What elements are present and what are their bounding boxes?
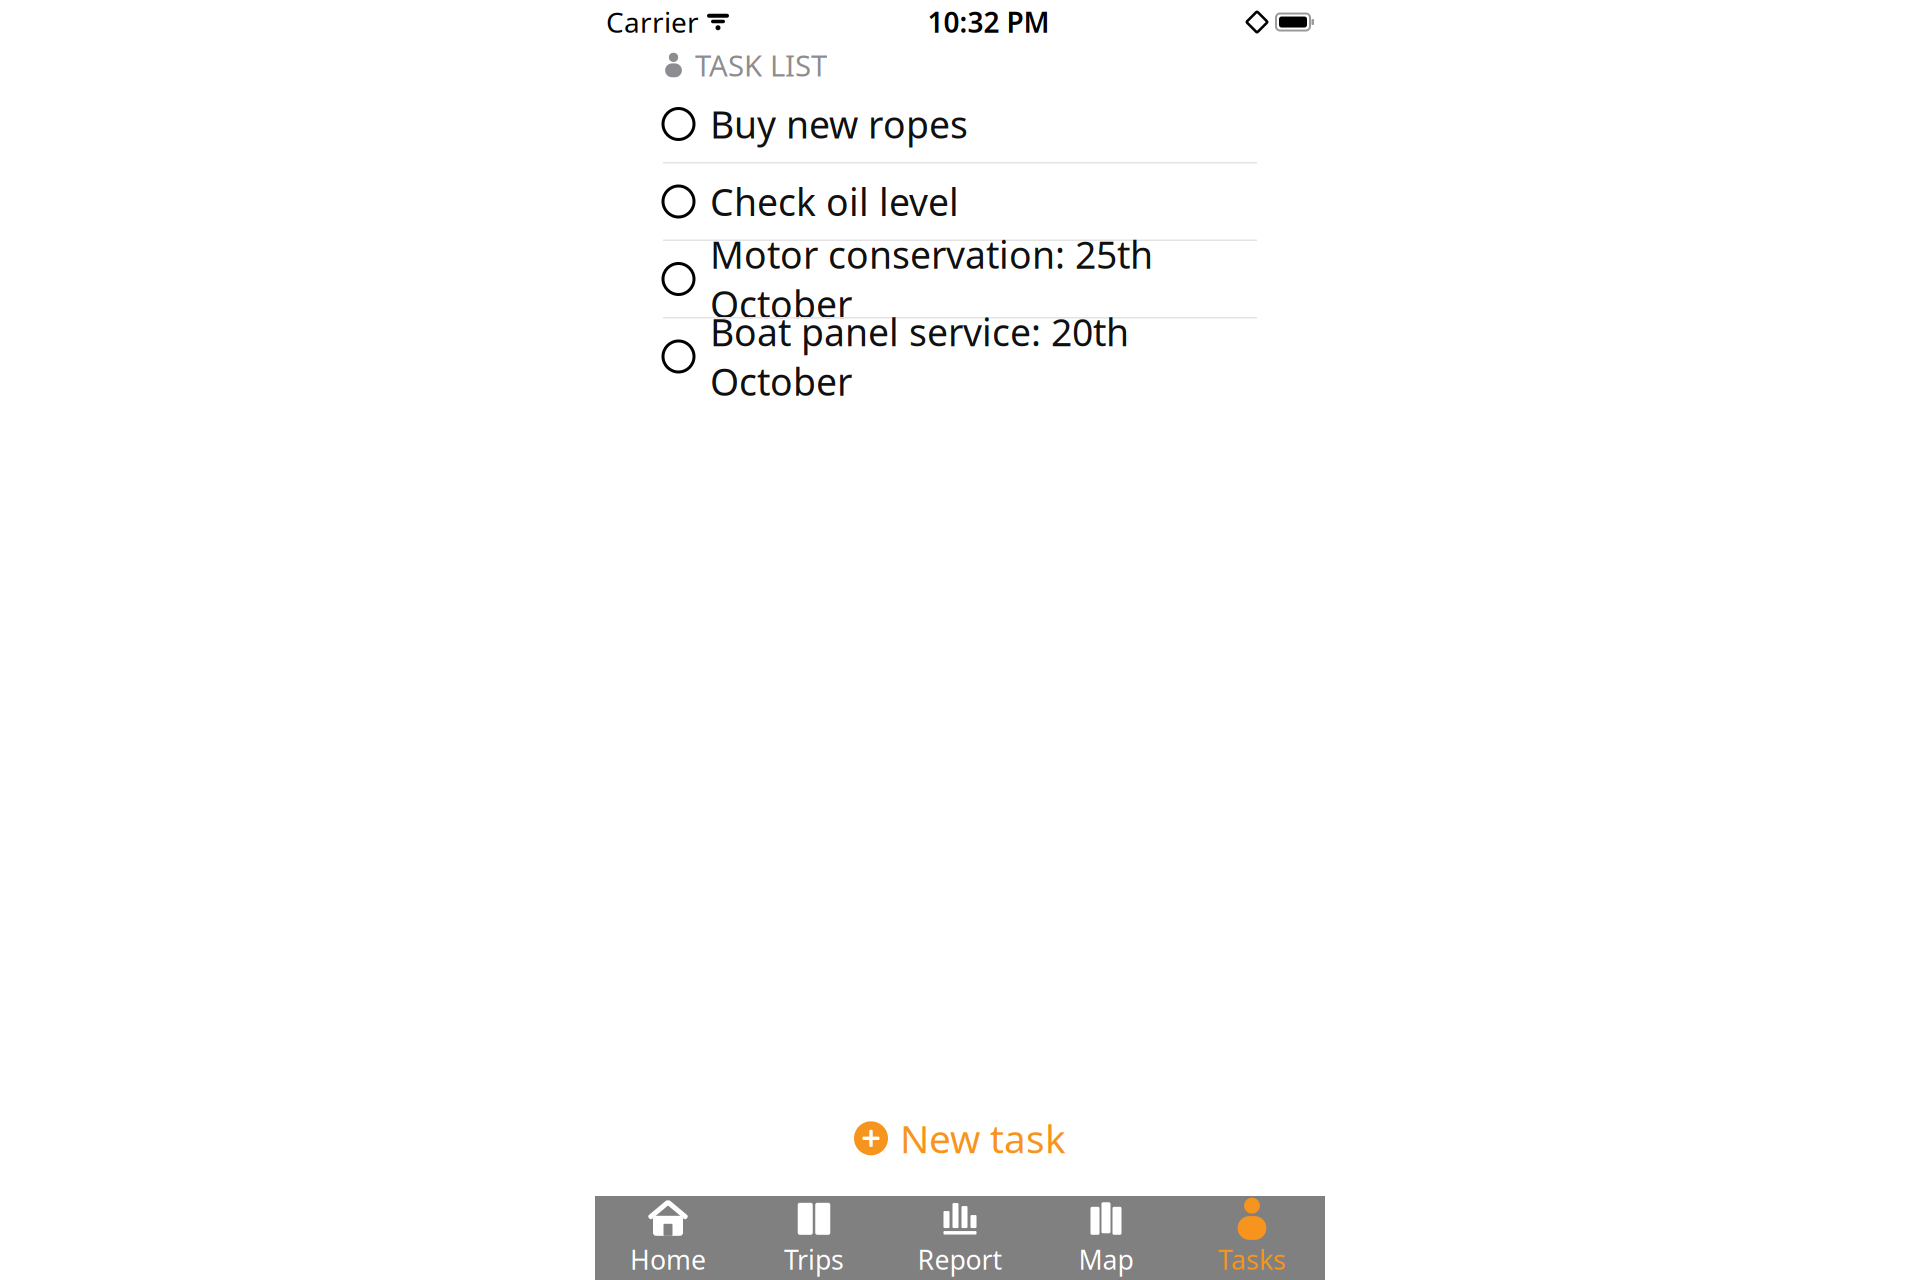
staticText: 10:32 PM xyxy=(927,3,1049,41)
staticText: Buy new ropes xyxy=(710,99,968,149)
staticText: Boat panel service: 20th October xyxy=(710,307,1129,406)
staticText: Trips xyxy=(784,1242,844,1277)
button[interactable]: Map xyxy=(1033,1196,1179,1280)
staticText: Report xyxy=(917,1242,1002,1277)
button[interactable]: Motor conservation: 25th October xyxy=(663,241,1257,318)
button[interactable]: Trips xyxy=(741,1196,887,1280)
staticText: Home xyxy=(630,1242,706,1277)
button[interactable]: Report xyxy=(887,1196,1033,1280)
button[interactable]: Check oil level xyxy=(663,163,1257,241)
button[interactable]: Buy new ropes xyxy=(663,86,1257,163)
button[interactable]: Tasks xyxy=(1179,1196,1325,1280)
staticText: New task xyxy=(900,1113,1066,1164)
button[interactable]: Home xyxy=(595,1196,741,1280)
button[interactable]: New task xyxy=(844,1107,1076,1170)
staticText: Map xyxy=(1078,1242,1133,1277)
staticText: Tasks xyxy=(1218,1242,1286,1277)
staticText: TASK LIST xyxy=(695,45,827,84)
staticText: Motor conservation: 25th October xyxy=(710,229,1153,329)
staticText: Check oil level xyxy=(710,177,959,226)
staticText: Carrier xyxy=(606,3,699,41)
button[interactable]: Boat panel service: 20th October xyxy=(663,318,1257,396)
